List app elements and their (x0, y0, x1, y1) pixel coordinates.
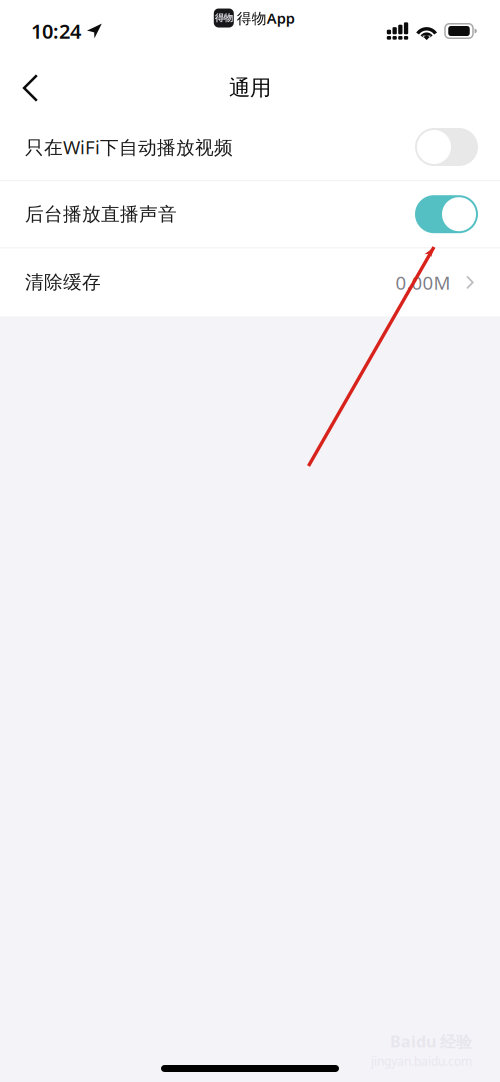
staticText: 10:24 (31, 18, 81, 44)
staticText: 得物App (237, 8, 295, 28)
button[interactable]: Back (0, 62, 60, 114)
staticText: Baidu 经验 (390, 1031, 472, 1052)
staticText: 只在WiFi下自动播放视频 (25, 135, 233, 159)
staticText: 清除缓存 (25, 271, 101, 294)
staticText: 通用 (229, 75, 271, 101)
staticText: jingyan.baidu.com (371, 1053, 472, 1069)
staticText: 后台播放直播声音 (25, 203, 177, 226)
staticText: 0.00M (395, 270, 450, 295)
button[interactable]: 只在WiFi下自动播放视频 (0, 114, 500, 180)
button[interactable]: 后台播放直播声音 (0, 181, 500, 247)
button[interactable]: 清除缓存 (0, 248, 500, 316)
staticText: 得物 (215, 12, 233, 24)
